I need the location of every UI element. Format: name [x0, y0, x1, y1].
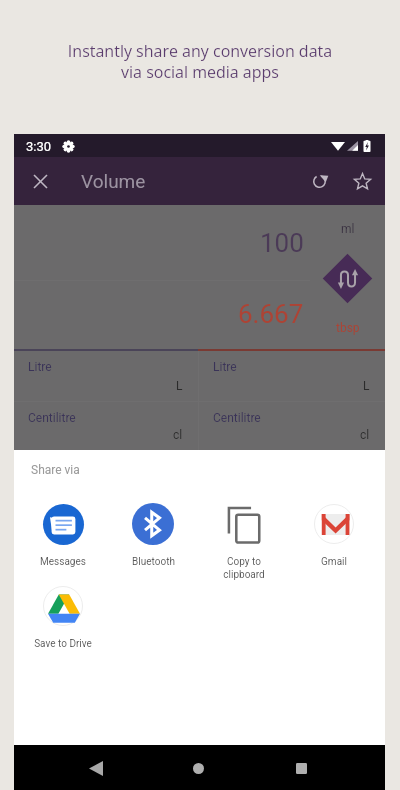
button[interactable]: Back	[76, 748, 116, 788]
button[interactable]: Home	[178, 748, 218, 788]
staticText: Centilitre	[213, 411, 261, 425]
staticText: 6.667	[238, 299, 304, 329]
button[interactable]: Centilitre	[14, 402, 198, 450]
staticText: Gmail	[321, 556, 347, 568]
staticText: Centilitre	[28, 411, 76, 425]
staticText: tbsp	[336, 321, 360, 335]
staticText: 100	[260, 228, 304, 258]
staticText: Volume	[81, 170, 146, 192]
button[interactable]: Refresh	[297, 159, 341, 203]
button[interactable]: Favourite	[340, 159, 384, 203]
staticText: Litre	[28, 360, 52, 374]
staticText: Share via	[31, 463, 80, 477]
button[interactable]: Close	[18, 159, 62, 203]
button[interactable]: Messages	[18, 503, 108, 568]
button[interactable]: Bluetooth	[108, 503, 198, 568]
staticText: L	[363, 379, 370, 393]
button[interactable]: Copy to clipboard	[199, 503, 289, 581]
button[interactable]: Litre	[199, 351, 385, 401]
staticText: Bluetooth	[132, 556, 175, 568]
staticText: cl	[360, 428, 370, 442]
staticText: Litre	[213, 360, 237, 374]
staticText: cl	[173, 428, 183, 442]
button[interactable]: Centilitre	[199, 402, 385, 450]
button[interactable]: Gmail	[289, 503, 379, 568]
button[interactable]: Save to Drive	[18, 585, 108, 650]
staticText: 3:30	[26, 139, 52, 154]
staticText: Messages	[40, 556, 86, 568]
staticText: Copy to clipboard	[223, 556, 265, 581]
staticText: Instantly share any conversion data via …	[0, 40, 400, 83]
staticText: L	[176, 379, 183, 393]
staticText: Save to Drive	[34, 638, 92, 650]
button[interactable]: Recents	[281, 748, 321, 788]
button[interactable]: Swap units	[323, 254, 372, 303]
staticText: ml	[341, 222, 355, 236]
button[interactable]: Litre	[14, 351, 198, 401]
